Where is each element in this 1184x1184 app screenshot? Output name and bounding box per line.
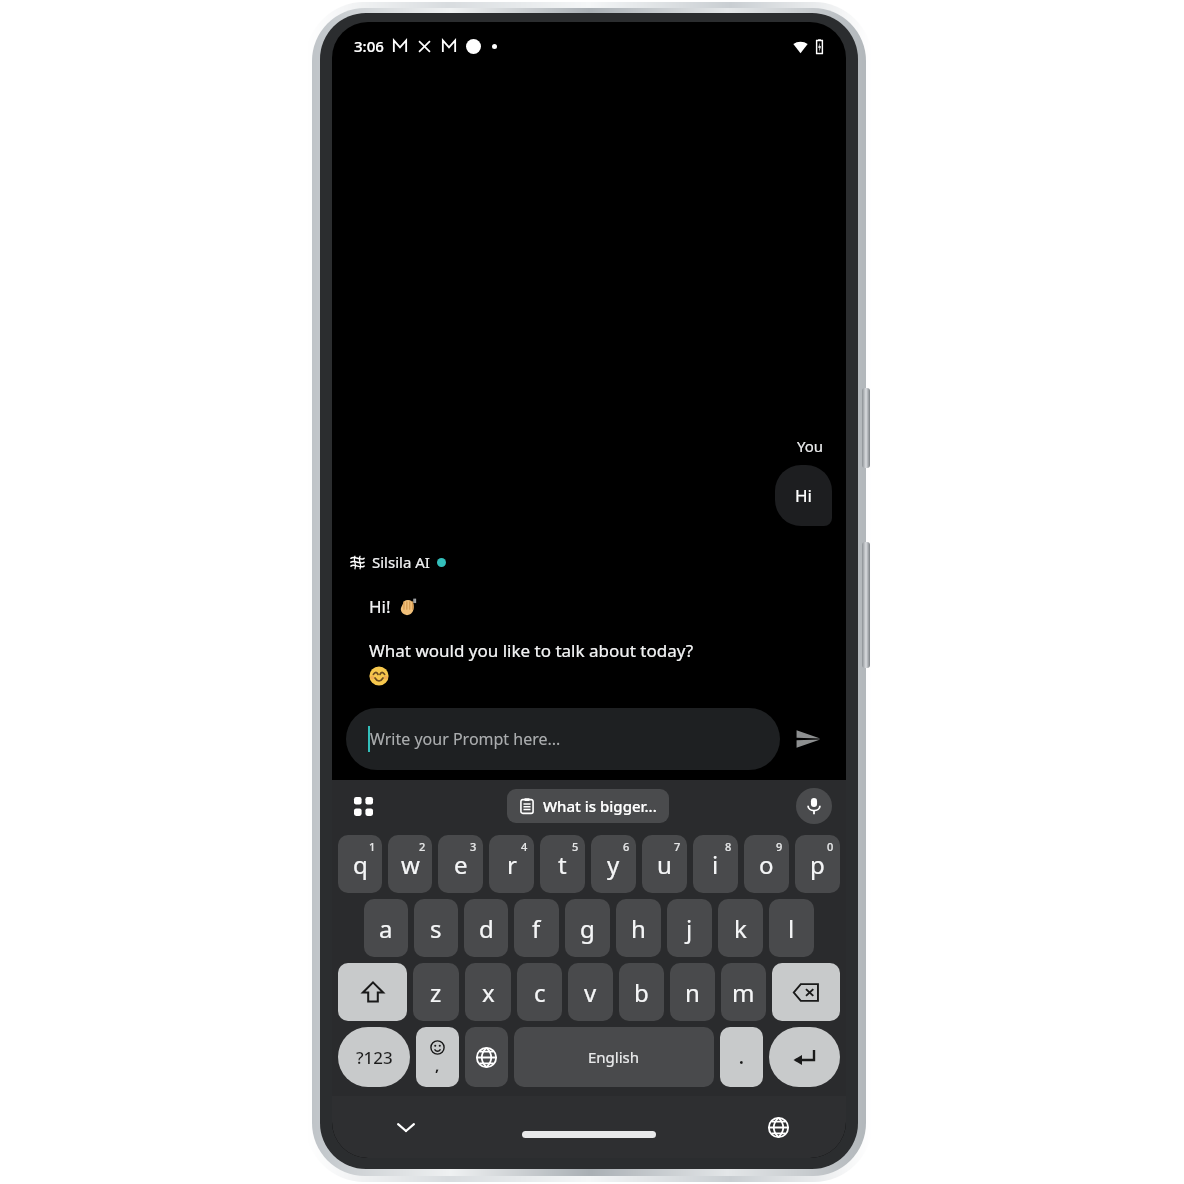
- button[interactable]: i: [693, 835, 738, 893]
- staticText: i: [712, 848, 719, 881]
- button[interactable]: English: [514, 1027, 714, 1087]
- button[interactable]: y: [591, 835, 636, 893]
- button[interactable]: What is bigger...: [507, 789, 669, 823]
- button[interactable]: Hide keyboard: [388, 1109, 424, 1145]
- staticText: g: [580, 912, 595, 945]
- staticText: e: [454, 848, 468, 881]
- button[interactable]: m: [721, 963, 766, 1021]
- staticText: What would you like to talk about today?: [369, 639, 694, 662]
- staticText: u: [657, 848, 672, 881]
- button[interactable]: h: [616, 899, 661, 957]
- button[interactable]: f: [514, 899, 559, 957]
- button[interactable]: Change language: [465, 1027, 508, 1087]
- staticText: y: [607, 848, 620, 881]
- staticText: 2: [419, 839, 426, 854]
- staticText: m: [732, 976, 755, 1009]
- staticText: z: [430, 976, 442, 1009]
- button[interactable]: a: [364, 899, 408, 957]
- other: Power: [862, 388, 870, 468]
- staticText: 1: [369, 839, 376, 854]
- staticText: t: [558, 848, 567, 881]
- button[interactable]: Send: [780, 711, 836, 767]
- button[interactable]: b: [619, 963, 664, 1021]
- button[interactable]: j: [667, 899, 712, 957]
- button[interactable]: x: [465, 963, 511, 1021]
- staticText: 6: [623, 839, 630, 854]
- staticText: k: [734, 912, 747, 945]
- button[interactable]: ?123: [338, 1027, 410, 1087]
- button[interactable]: d: [464, 899, 508, 957]
- staticText: What is bigger...: [543, 796, 657, 816]
- staticText: n: [685, 976, 700, 1009]
- staticText: 0: [827, 839, 834, 854]
- staticText: 3:06: [354, 36, 384, 56]
- button[interactable]: Voice input: [796, 788, 832, 824]
- staticText: Write your Prompt here...: [370, 728, 561, 750]
- button[interactable]: u: [642, 835, 687, 893]
- staticText: f: [532, 912, 541, 945]
- staticText: c: [534, 976, 546, 1009]
- button[interactable]: n: [670, 963, 715, 1021]
- button[interactable]: v: [568, 963, 613, 1021]
- staticText: p: [810, 848, 825, 881]
- button[interactable]: r: [489, 835, 534, 893]
- button[interactable]: Write your Prompt here...: [346, 708, 780, 770]
- button[interactable]: o: [744, 835, 789, 893]
- button[interactable]: Shift: [338, 963, 407, 1021]
- button[interactable]: Switch input method: [760, 1109, 796, 1145]
- button[interactable]: Backspace: [772, 963, 840, 1021]
- staticText: Hi: [795, 484, 812, 507]
- staticText: 7: [674, 839, 681, 854]
- button[interactable]: Toolbar: [346, 789, 380, 823]
- staticText: r: [507, 848, 517, 881]
- staticText: a: [379, 912, 393, 945]
- staticText: You: [797, 436, 824, 456]
- button[interactable]: l: [769, 899, 814, 957]
- staticText: Silsila AI: [372, 552, 430, 572]
- staticText: d: [479, 912, 494, 945]
- staticText: j: [686, 912, 693, 945]
- staticText: 5: [572, 839, 579, 854]
- staticText: Hi!: [369, 595, 391, 618]
- button[interactable]: .: [720, 1027, 763, 1087]
- button[interactable]: z: [413, 963, 459, 1021]
- staticText: .: [739, 1046, 744, 1069]
- staticText: o: [759, 848, 774, 881]
- other: Volume: [862, 542, 870, 668]
- button[interactable]: w: [388, 835, 432, 893]
- staticText: l: [788, 912, 795, 945]
- button[interactable]: Hi: [775, 465, 832, 526]
- staticText: English: [588, 1047, 640, 1067]
- staticText: 9: [776, 839, 783, 854]
- button[interactable]: s: [414, 899, 458, 957]
- staticText: 4: [521, 839, 528, 854]
- button[interactable]: Enter: [769, 1027, 840, 1087]
- staticText: ?123: [356, 1046, 393, 1069]
- staticText: b: [634, 976, 649, 1009]
- button[interactable]: t: [540, 835, 585, 893]
- button[interactable]: g: [565, 899, 610, 957]
- staticText: v: [584, 976, 597, 1009]
- staticText: 8: [725, 839, 732, 854]
- staticText: q: [353, 848, 368, 881]
- staticText: x: [482, 976, 495, 1009]
- button[interactable]: Emoji: [416, 1027, 459, 1087]
- staticText: 3: [470, 839, 477, 854]
- staticText: w: [401, 848, 420, 881]
- button[interactable]: q: [338, 835, 382, 893]
- staticText: ,: [435, 1055, 440, 1075]
- button[interactable]: c: [517, 963, 562, 1021]
- staticText: s: [430, 912, 442, 945]
- button[interactable]: k: [718, 899, 763, 957]
- button[interactable]: e: [438, 835, 483, 893]
- staticText: h: [631, 912, 646, 945]
- button[interactable]: p: [795, 835, 840, 893]
